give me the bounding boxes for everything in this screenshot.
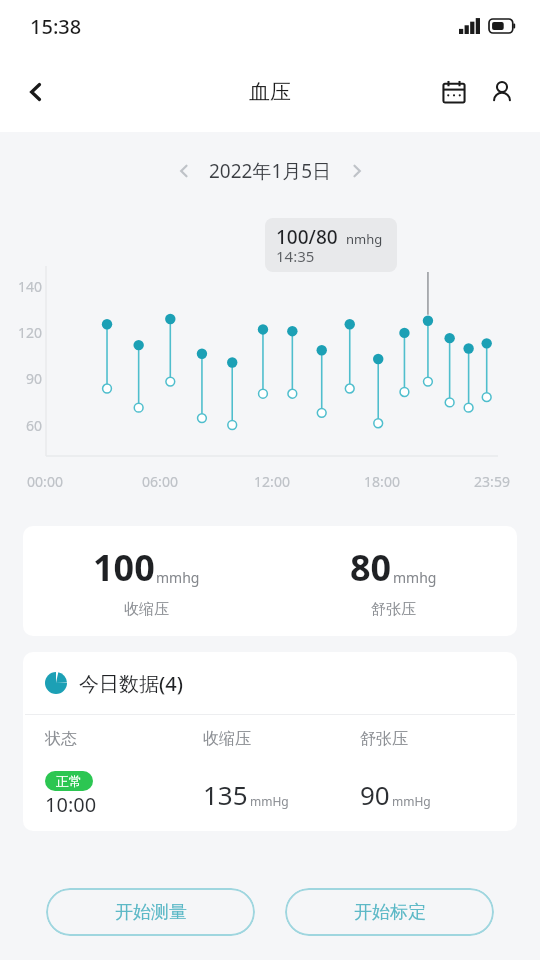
staticText: 2022年1月5日 xyxy=(209,158,332,184)
staticText: 90 xyxy=(12,369,42,388)
staticText: mmHg xyxy=(392,793,431,809)
staticText: 135 xyxy=(203,777,248,812)
staticText: 80 xyxy=(350,543,392,592)
staticText: 收缩压 xyxy=(203,729,360,749)
staticText: 舒张压 xyxy=(371,600,416,619)
staticText: 开始测量 xyxy=(115,901,187,924)
staticText: 开始标定 xyxy=(354,901,426,924)
button[interactable]: 正常 xyxy=(23,763,517,825)
button[interactable]: Previous day xyxy=(167,154,201,188)
staticText: 14:35 xyxy=(276,246,315,266)
staticText: 00:00 xyxy=(15,472,75,491)
staticText: 120 xyxy=(12,323,42,342)
staticText: mmHg xyxy=(250,793,289,809)
staticText: 收缩压 xyxy=(124,600,169,619)
staticText: 100/80 xyxy=(276,224,338,250)
button[interactable]: 今日数据(4) xyxy=(23,652,517,714)
staticText: mmhg xyxy=(393,568,437,587)
staticText: 06:00 xyxy=(130,472,190,491)
staticText: 23:59 xyxy=(462,472,522,491)
staticText: 60 xyxy=(12,416,42,435)
button[interactable]: Calendar xyxy=(432,70,476,114)
staticText: 10:00 xyxy=(45,791,97,818)
button[interactable]: Next day xyxy=(340,154,374,188)
staticText: 血压 xyxy=(249,79,291,105)
staticText: mmhg xyxy=(156,568,200,587)
button[interactable]: Back xyxy=(12,68,60,116)
staticText: 12:00 xyxy=(242,472,302,491)
button[interactable]: 100/80 xyxy=(265,218,397,272)
staticText: 舒张压 xyxy=(360,729,517,749)
button[interactable]: Profile xyxy=(480,70,524,114)
staticText: 18:00 xyxy=(352,472,412,491)
staticText: nmhg xyxy=(346,230,383,248)
staticText: 100 xyxy=(93,543,155,592)
staticText: 正常 xyxy=(56,773,82,789)
button[interactable]: 开始测量 xyxy=(46,888,255,936)
staticText: 今日数据(4) xyxy=(79,670,183,697)
button[interactable]: 开始标定 xyxy=(285,888,494,936)
staticText: 140 xyxy=(12,277,42,296)
button[interactable]: 100 xyxy=(23,526,517,636)
staticText: 15:38 xyxy=(30,13,82,40)
staticText: 状态 xyxy=(45,729,203,749)
staticText: 90 xyxy=(360,777,390,812)
